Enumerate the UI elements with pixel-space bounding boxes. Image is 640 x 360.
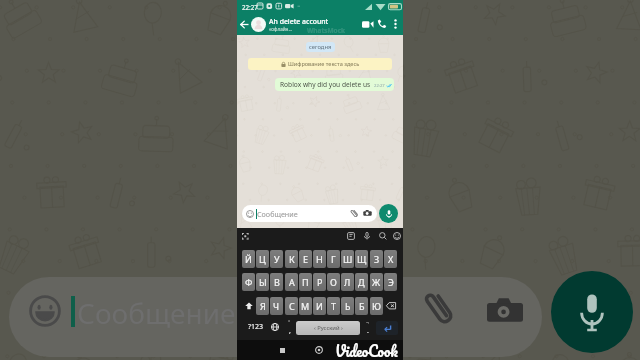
staticText: . [367, 326, 369, 335]
button[interactable]: Recent apps [275, 343, 289, 357]
staticText: Ю [372, 300, 381, 312]
other: Camera [487, 295, 523, 331]
staticText: Й [245, 253, 252, 265]
staticText: Я [260, 300, 266, 312]
button[interactable]: Stickers [346, 231, 356, 241]
staticText: Ы [259, 276, 267, 288]
staticText: З [374, 253, 380, 265]
button[interactable]: К [285, 250, 298, 268]
staticText: И [316, 300, 323, 312]
button[interactable]: ° [282, 319, 296, 335]
staticText: WhatsMock [307, 26, 346, 35]
button[interactable]: Й [242, 250, 255, 268]
button[interactable]: Т [327, 297, 340, 315]
button[interactable] [251, 17, 266, 32]
button[interactable]: П [299, 273, 312, 291]
button[interactable]: Roblox why did you delete us [280, 80, 391, 89]
staticText: ‹ Русский › [314, 324, 343, 332]
button[interactable]: More options [389, 18, 401, 30]
button[interactable]: О [327, 273, 340, 291]
staticText: сегодня [309, 43, 332, 51]
button[interactable]: А [285, 273, 298, 291]
staticText: , [289, 326, 291, 335]
staticText: Г [331, 253, 336, 265]
button[interactable]: Search [378, 231, 388, 241]
staticText: К [289, 253, 295, 265]
button[interactable]: И [313, 297, 326, 315]
button[interactable]: Ы [256, 273, 269, 291]
button[interactable]: М [299, 297, 312, 315]
other: Attach file [419, 288, 461, 330]
staticText: О [330, 276, 337, 288]
button[interactable]: Сообщение [246, 205, 373, 222]
button[interactable]: Н [313, 250, 326, 268]
button[interactable]: Г [327, 250, 340, 268]
staticText: Д [358, 276, 365, 288]
staticText: В [274, 276, 280, 288]
button[interactable]: Voice input [362, 231, 372, 241]
button[interactable]: Backspace [384, 297, 397, 315]
staticText: Ч [273, 300, 280, 312]
button[interactable]: ‹ Русский › [296, 321, 360, 335]
button[interactable]: Ь [341, 297, 354, 315]
button[interactable]: Д [355, 273, 368, 291]
button[interactable]: Keyboard settings [241, 232, 250, 241]
button[interactable]: ¬ [360, 319, 374, 335]
button[interactable]: Б [355, 297, 368, 315]
staticText: ° [288, 319, 291, 326]
staticText: М [301, 300, 310, 312]
button[interactable]: З [370, 250, 383, 268]
staticText: Л [344, 276, 351, 288]
button[interactable]: Е [299, 250, 312, 268]
staticText: Ah delete account [269, 17, 329, 26]
button[interactable]: Emoji [392, 231, 402, 241]
button[interactable]: Ш [341, 250, 354, 268]
button[interactable]: Back [237, 13, 251, 35]
staticText: VideoCook [335, 339, 398, 359]
staticText: Ф [245, 276, 253, 288]
other: Emoji [29, 295, 61, 327]
button[interactable]: Ф [242, 273, 255, 291]
button[interactable]: Я [256, 297, 269, 315]
staticText: Щ [357, 253, 367, 265]
staticText: У [274, 253, 280, 265]
button[interactable]: Э [384, 273, 397, 291]
other: Camera [363, 209, 372, 218]
button[interactable]: Ж [370, 273, 383, 291]
button[interactable]: Шифрование текста здесь [248, 60, 392, 68]
staticText: Т [331, 300, 337, 312]
button[interactable]: ?123 [242, 319, 270, 335]
button[interactable]: Л [341, 273, 354, 291]
button[interactable]: В [270, 273, 283, 291]
button[interactable]: У [270, 250, 283, 268]
button[interactable]: Shift [242, 297, 255, 315]
staticText: Н [316, 253, 323, 265]
button[interactable]: Х [384, 250, 397, 268]
button[interactable]: Home [312, 343, 326, 357]
staticText: С [289, 300, 295, 312]
button[interactable]: Call [375, 17, 389, 31]
button[interactable]: Ц [256, 250, 269, 268]
button[interactable]: Ч [270, 297, 283, 315]
button[interactable]: Р [313, 273, 326, 291]
staticText: Р [317, 276, 323, 288]
button[interactable]: С [285, 297, 298, 315]
button[interactable]: Record voice message [551, 271, 633, 353]
staticText: ¬ [366, 319, 369, 326]
button[interactable]: сегодня [309, 43, 332, 51]
button[interactable]: Video call [360, 17, 375, 32]
staticText: Сообщение [77, 294, 236, 332]
button[interactable]: Ю [370, 297, 383, 315]
staticText: Ж [372, 276, 381, 288]
button[interactable] [9, 277, 542, 357]
button[interactable]: Record voice message [379, 204, 398, 223]
staticText: Ь [345, 300, 351, 312]
staticText: Б [359, 300, 365, 312]
staticText: А [289, 276, 295, 288]
staticText: Сообщение [257, 209, 298, 219]
staticText: «офлайн... [269, 26, 293, 32]
button[interactable]: Change language [267, 319, 283, 335]
button[interactable]: Enter [376, 321, 398, 335]
staticText: Е [303, 253, 309, 265]
button[interactable]: Щ [355, 250, 368, 268]
